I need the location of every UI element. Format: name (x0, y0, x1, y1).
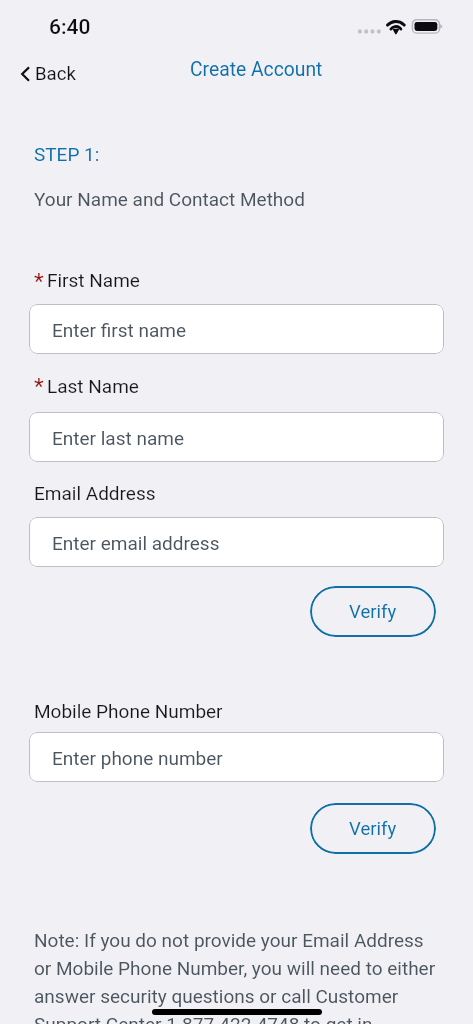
staticText: Your Name and Contact Method (34, 188, 305, 210)
staticText: Create Account (190, 58, 323, 81)
other: Cellular signal (355, 25, 383, 39)
staticText: Last Name (47, 375, 139, 397)
button[interactable]: Enter phone number (29, 732, 444, 782)
staticText: Note: If you do not provide your Email A… (34, 929, 440, 1024)
staticText: Enter first name (52, 319, 187, 341)
button[interactable]: Verify (310, 586, 436, 637)
staticText: Verify (349, 818, 397, 840)
button[interactable]: Enter email address (29, 517, 444, 567)
button[interactable]: Verify (310, 803, 436, 854)
staticText: Enter last name (52, 427, 184, 449)
button[interactable]: Back (12, 59, 86, 89)
staticText: Enter phone number (52, 747, 223, 769)
staticText: Back (35, 63, 76, 85)
staticText: Verify (349, 601, 397, 623)
other: Wi-Fi (384, 16, 408, 36)
staticText: * (34, 373, 44, 399)
other: Battery (411, 18, 445, 35)
staticText: Enter email address (52, 532, 220, 554)
button[interactable]: Enter last name (29, 412, 444, 462)
staticText: STEP 1: (34, 143, 100, 165)
staticText: Email Address (34, 482, 156, 504)
staticText: Mobile Phone Number (34, 700, 223, 722)
staticText: First Name (47, 269, 140, 291)
staticText: 6:40 (49, 15, 91, 40)
staticText: * (34, 268, 44, 294)
button[interactable]: Enter first name (29, 304, 444, 354)
